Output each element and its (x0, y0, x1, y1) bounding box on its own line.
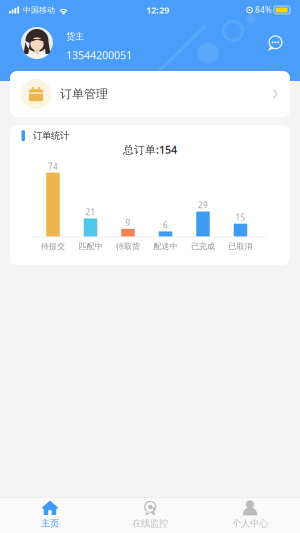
button[interactable]: 订单管理 (10, 71, 290, 117)
staticText: 已取消 (228, 241, 252, 251)
staticText: 总订单:154 (123, 142, 177, 157)
staticText: 74 (48, 161, 58, 172)
staticText: 匹配中 (78, 241, 102, 251)
staticText: 订单统计 (33, 130, 69, 141)
staticText: 29 (198, 200, 208, 210)
button[interactable]: 消息 (260, 28, 290, 58)
staticText: 中国移动 (23, 5, 55, 15)
staticText: 待提交 (41, 241, 65, 251)
button[interactable]: 在线监控 (100, 495, 200, 533)
staticText: 13544200051 (66, 48, 132, 62)
staticText: 货主 (66, 31, 84, 42)
staticText: 订单管理 (60, 87, 108, 101)
staticText: 15 (235, 212, 245, 223)
staticText: 待取货 (116, 241, 140, 251)
button[interactable]: 个人中心 (200, 495, 300, 533)
button[interactable]: 主页 (0, 495, 100, 533)
staticText: 12:29 (146, 4, 169, 16)
staticText: 配送中 (153, 241, 177, 251)
staticText: 9 (125, 217, 130, 228)
staticText: 主页 (41, 518, 59, 529)
staticText: 6 (163, 220, 168, 230)
staticText: 个人中心 (232, 518, 268, 529)
staticText: 84% (255, 5, 272, 15)
staticText: 已完成 (191, 241, 215, 251)
staticText: 在线监控 (132, 518, 168, 529)
staticText: 21 (85, 207, 95, 217)
